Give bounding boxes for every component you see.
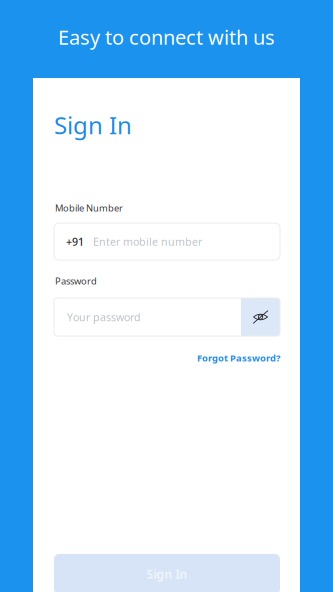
staticText: Enter mobile number bbox=[93, 234, 202, 249]
button[interactable]: +91 bbox=[54, 223, 280, 260]
staticText: Mobile Number bbox=[55, 202, 123, 214]
staticText: +91 bbox=[66, 234, 84, 249]
button[interactable]: Your password bbox=[54, 298, 280, 336]
staticText: Forgot Password? bbox=[197, 352, 280, 364]
staticText: Sign In bbox=[54, 109, 132, 141]
staticText: Password bbox=[55, 275, 97, 287]
staticText: Sign In bbox=[146, 566, 187, 582]
staticText: Your password bbox=[67, 310, 141, 324]
staticText: Easy to connect with us bbox=[58, 24, 275, 50]
button[interactable]: Forgot Password? bbox=[54, 351, 280, 365]
button[interactable]: Show password bbox=[241, 298, 280, 336]
